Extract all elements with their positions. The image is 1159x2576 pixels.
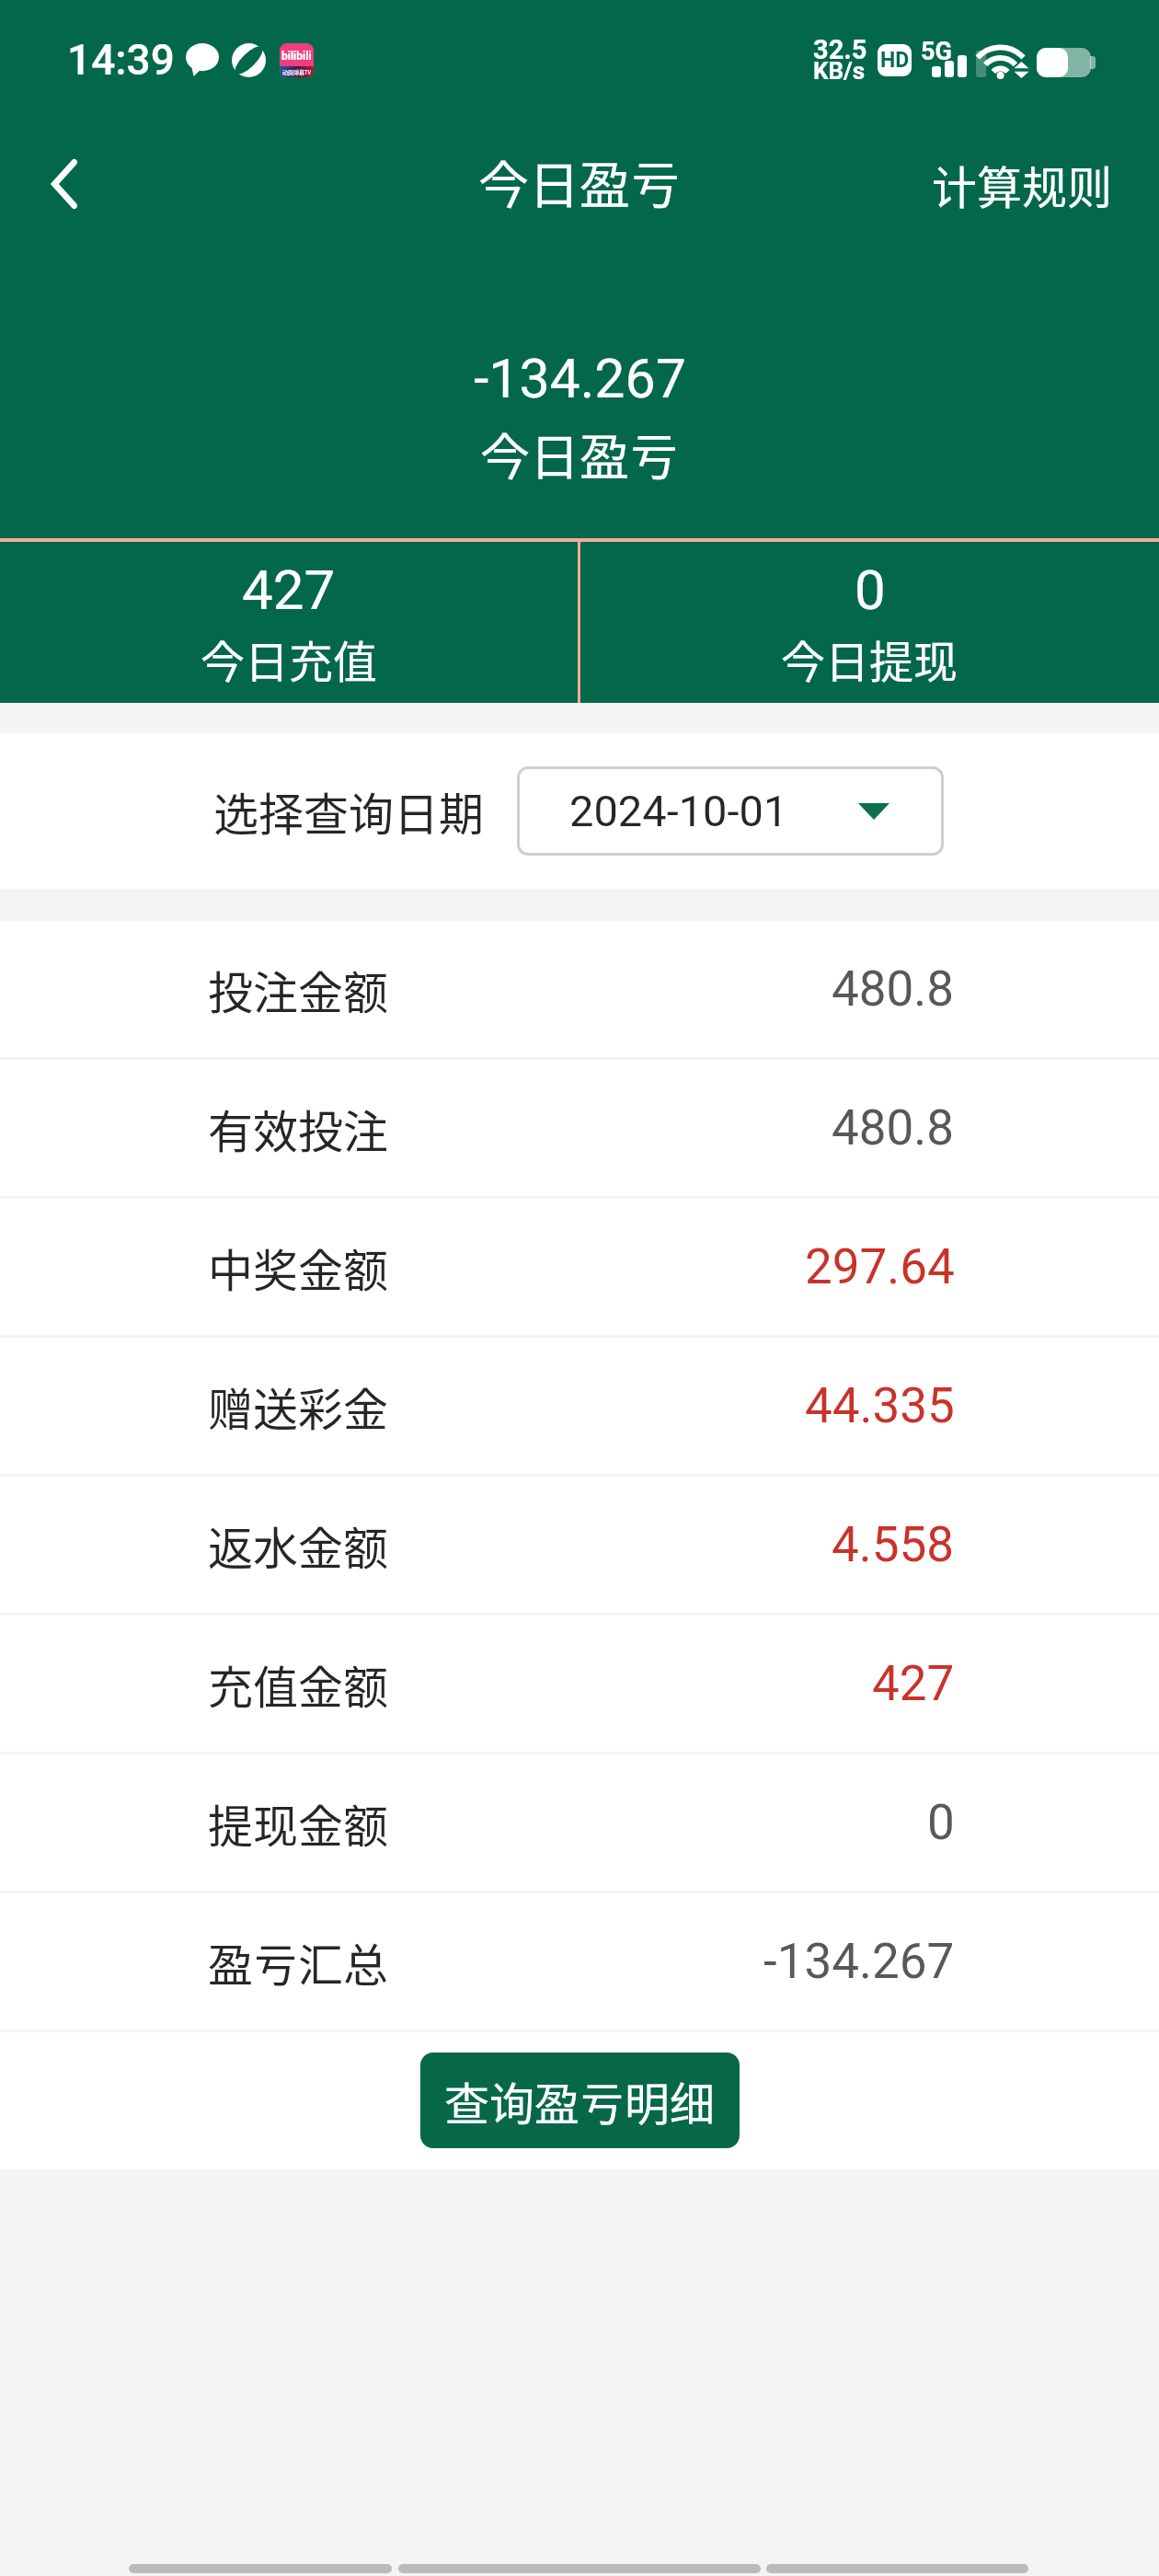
staticText: 4.558 (832, 1516, 955, 1573)
staticText: 480.8 (832, 1099, 955, 1156)
staticText: 赠送彩金 (208, 1374, 389, 1439)
staticText: 5G (921, 37, 952, 66)
button[interactable]: 427 (0, 542, 578, 703)
staticText: 返水金额 (208, 1512, 389, 1578)
staticText: 选择查询日期 (213, 778, 485, 844)
staticText: 44.335 (805, 1377, 955, 1434)
button[interactable]: Back (129, 2564, 392, 2573)
button[interactable]: 盈亏汇总 (0, 1893, 1159, 2030)
staticText: 0 (855, 558, 886, 622)
staticText: 动画弹幕TV (282, 68, 312, 76)
staticText: -134.267 (763, 1933, 955, 1990)
staticText: 427 (242, 558, 336, 622)
staticText: KB/s (813, 57, 866, 85)
staticText: -134.267 (474, 347, 686, 410)
staticText: 计算规则 (932, 152, 1113, 217)
staticText: 投注金额 (208, 957, 389, 1022)
staticText: 充值金额 (208, 1651, 389, 1717)
button[interactable]: 计算规则 (932, 152, 1113, 217)
staticText: 今日提现 (781, 627, 958, 691)
staticText: 0 (927, 1794, 955, 1851)
staticText: 427 (872, 1655, 955, 1712)
staticText: 今日充值 (201, 627, 378, 691)
staticText: HD (880, 48, 910, 73)
button[interactable]: 0 (580, 542, 1159, 703)
button[interactable]: 投注金额 (0, 921, 1159, 1057)
staticText: 中奖金额 (208, 1235, 389, 1300)
staticText: 盈亏汇总 (208, 1929, 389, 1995)
button[interactable]: Recents (766, 2564, 1028, 2573)
staticText: 提现金额 (208, 1790, 389, 1856)
staticText: 297.64 (805, 1238, 955, 1295)
staticText: 14:39 (67, 35, 175, 85)
staticText: 今日盈亏 (478, 144, 682, 218)
button[interactable]: 提现金额 (0, 1754, 1159, 1891)
button[interactable]: 赠送彩金 (0, 1338, 1159, 1474)
staticText: 今日盈亏 (480, 418, 679, 489)
staticText: 查询盈亏明细 (444, 2068, 716, 2133)
staticText: bilibili (281, 50, 312, 63)
button[interactable]: 中奖金额 (0, 1199, 1159, 1335)
button[interactable]: 2024-10-01 (517, 766, 944, 856)
staticText: 2024-10-01 (569, 786, 788, 836)
button[interactable]: 查询盈亏明细 (420, 2053, 740, 2148)
staticText: 480.8 (832, 960, 955, 1018)
button[interactable]: 充值金额 (0, 1616, 1159, 1752)
staticText: 32.5 (813, 34, 867, 65)
button[interactable]: 返水金额 (0, 1477, 1159, 1613)
staticText: 有效投注 (208, 1096, 389, 1161)
button[interactable]: Back (18, 138, 110, 230)
button[interactable]: Home (398, 2564, 761, 2573)
button[interactable]: 有效投注 (0, 1060, 1159, 1196)
